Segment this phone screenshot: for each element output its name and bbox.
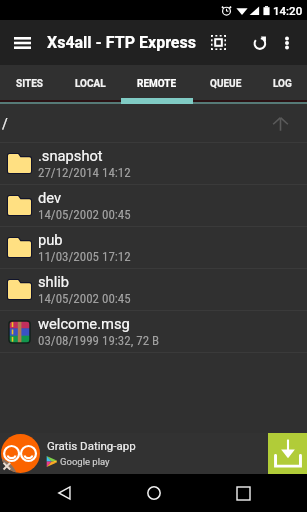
staticText: 03/08/1999 19:32, 72 B xyxy=(38,333,160,348)
staticText: REMOTE xyxy=(137,78,177,90)
staticText: QUEUE xyxy=(210,78,242,90)
staticText: LOCAL xyxy=(75,78,106,90)
button[interactable]: Select all xyxy=(200,20,236,65)
button[interactable]: REMOTE xyxy=(121,65,193,103)
staticText: 14/05/2002 00:45 xyxy=(38,207,131,222)
staticText: dev xyxy=(38,189,62,206)
staticText: Gratis Dating-app xyxy=(47,439,136,452)
button[interactable]: Refresh xyxy=(242,20,279,65)
button[interactable]: Home xyxy=(136,475,172,511)
button[interactable]: shlib xyxy=(0,269,307,310)
staticText: Google play xyxy=(60,456,110,467)
button[interactable]: pub xyxy=(0,227,307,268)
staticText: LOG xyxy=(273,78,292,90)
button[interactable]: Download xyxy=(268,433,307,474)
staticText: 11/03/2005 17:12 xyxy=(38,249,131,264)
button[interactable]: Recent apps xyxy=(225,475,261,511)
button[interactable]: Up one level xyxy=(265,109,295,139)
staticText: welcome.msg xyxy=(38,315,130,332)
button[interactable]: .snapshot xyxy=(0,143,307,184)
button[interactable]: Open navigation drawer xyxy=(6,20,39,65)
button[interactable]: LOG xyxy=(258,65,307,103)
staticText: / xyxy=(2,116,8,132)
button[interactable]: SITES xyxy=(0,65,59,103)
button[interactable]: LOCAL xyxy=(59,65,121,103)
button[interactable]: welcome.msg xyxy=(0,311,307,352)
staticText: Xs4all - FTP Express xyxy=(47,33,196,52)
staticText: 27/12/2014 14:12 xyxy=(38,165,131,180)
staticText: 14/05/2002 00:45 xyxy=(38,291,131,306)
staticText: .snapshot xyxy=(38,147,103,164)
staticText: 14:20 xyxy=(273,4,303,17)
button[interactable]: QUEUE xyxy=(193,65,258,103)
button[interactable]: dev xyxy=(0,185,307,226)
staticText: pub xyxy=(38,231,63,248)
button[interactable]: Back xyxy=(46,475,82,511)
staticText: shlib xyxy=(38,273,70,290)
staticText: SITES xyxy=(16,78,43,90)
button[interactable]: More options xyxy=(274,20,300,65)
